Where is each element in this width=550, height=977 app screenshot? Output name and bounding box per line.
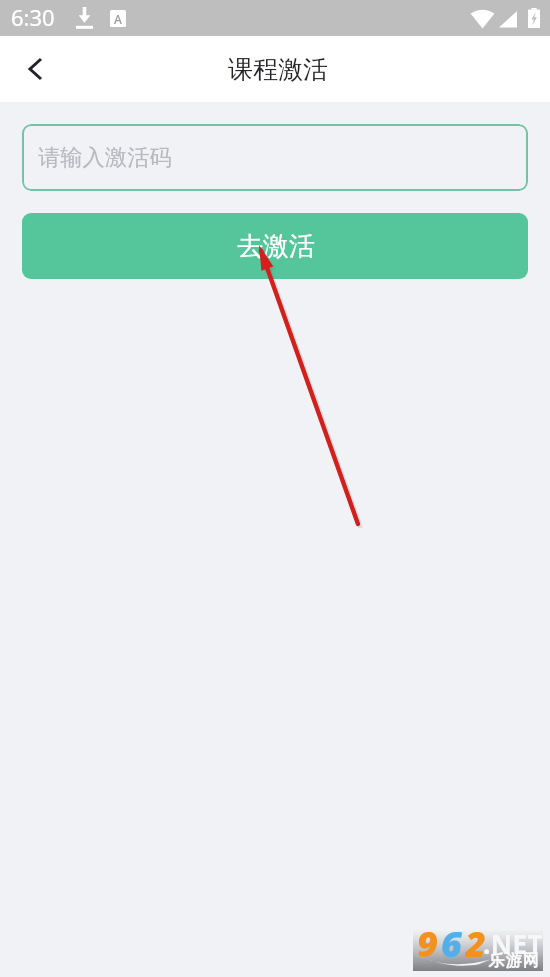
other: Battery charging <box>528 8 540 28</box>
staticText: 6 <box>441 919 465 961</box>
staticText: 课程激活 <box>228 54 328 85</box>
staticText: 6:30 <box>11 2 55 32</box>
other: Cellular signal <box>499 9 517 28</box>
button[interactable]: 去激活 <box>22 213 528 279</box>
button[interactable]: Back <box>0 36 58 102</box>
other: Download <box>76 7 93 29</box>
staticText: 去激活 <box>237 230 315 263</box>
other: App notification <box>110 10 126 27</box>
button[interactable]: 请输入激活码 <box>22 124 528 191</box>
staticText: 乐游网 <box>488 951 539 971</box>
staticText: A <box>114 11 122 27</box>
staticText: 请输入激活码 <box>38 144 172 172</box>
staticText: 9 <box>417 919 441 961</box>
other: Wi-Fi <box>470 7 495 29</box>
staticText: 2 <box>465 919 489 961</box>
staticText: .NET <box>483 926 544 961</box>
